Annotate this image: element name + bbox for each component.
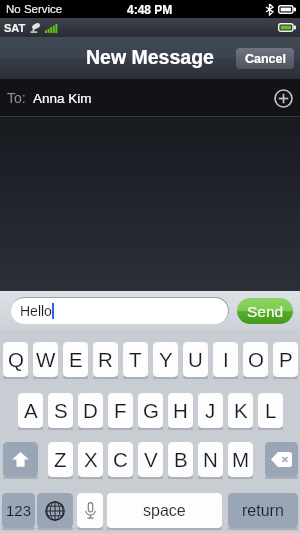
staticText: F — [114, 399, 127, 422]
staticText: Hello — [20, 303, 52, 319]
staticText: H — [173, 399, 188, 422]
staticText: N — [203, 448, 218, 471]
button[interactable]: Z — [48, 442, 73, 477]
button[interactable]: W — [33, 342, 58, 377]
button[interactable]: Shift — [3, 442, 38, 477]
staticText: X — [84, 448, 98, 471]
button[interactable]: S — [48, 393, 73, 428]
staticText: Z — [54, 448, 67, 471]
button[interactable]: Add contact — [272, 87, 294, 109]
staticText: K — [234, 399, 248, 422]
button[interactable]: P — [273, 342, 298, 377]
button[interactable]: U — [183, 342, 208, 377]
staticText: V — [144, 448, 158, 471]
button[interactable]: Backspace — [265, 442, 298, 477]
button[interactable]: H — [168, 393, 193, 428]
button[interactable]: return — [228, 493, 298, 528]
button[interactable]: To: — [0, 79, 300, 117]
button[interactable]: Q — [3, 342, 28, 377]
staticText: L — [265, 399, 277, 422]
staticText: Anna Kim — [33, 91, 92, 106]
staticText: 123 — [6, 502, 32, 519]
button[interactable]: N — [198, 442, 223, 477]
button[interactable]: A — [18, 393, 43, 428]
button[interactable]: Switch keyboard — [37, 493, 73, 528]
button[interactable]: I — [213, 342, 238, 377]
button[interactable]: K — [228, 393, 253, 428]
staticText: I — [223, 348, 229, 371]
button[interactable]: D — [78, 393, 103, 428]
staticText: B — [174, 448, 188, 471]
staticText: D — [83, 399, 98, 422]
button[interactable]: G — [138, 393, 163, 428]
staticText: W — [36, 348, 56, 371]
staticText: M — [232, 448, 250, 471]
button[interactable]: E — [63, 342, 88, 377]
staticText: 4:48 PM — [127, 3, 173, 16]
staticText: Cancel — [245, 52, 286, 66]
staticText: C — [113, 448, 128, 471]
button[interactable]: Y — [153, 342, 178, 377]
button[interactable]: C — [108, 442, 133, 477]
staticText: R — [98, 348, 113, 371]
button[interactable]: Hello — [11, 298, 228, 324]
staticText: No Service — [6, 3, 63, 16]
button[interactable]: B — [168, 442, 193, 477]
staticText: J — [205, 399, 216, 422]
button[interactable]: V — [138, 442, 163, 477]
button[interactable]: J — [198, 393, 223, 428]
staticText: Q — [8, 348, 24, 371]
staticText: Send — [247, 303, 284, 320]
button[interactable]: O — [243, 342, 268, 377]
staticText: O — [248, 348, 264, 371]
staticText: E — [69, 348, 83, 371]
staticText: S — [54, 399, 68, 422]
button[interactable]: R — [93, 342, 118, 377]
button[interactable]: T — [123, 342, 148, 377]
button[interactable]: F — [108, 393, 133, 428]
staticText: SAT — [4, 22, 26, 34]
staticText: To: — [7, 90, 26, 106]
button[interactable]: Dictation — [77, 493, 103, 528]
staticText: A — [24, 399, 38, 422]
button[interactable]: M — [228, 442, 253, 477]
staticText: U — [188, 348, 203, 371]
staticText: New Message — [86, 46, 214, 68]
staticText: G — [143, 399, 159, 422]
staticText: Y — [159, 348, 173, 371]
staticText: T — [129, 348, 142, 371]
button[interactable]: 123 — [2, 493, 35, 528]
staticText: space — [143, 502, 186, 520]
button[interactable]: L — [258, 393, 283, 428]
button[interactable]: Send — [237, 298, 293, 324]
staticText: return — [242, 502, 284, 520]
button[interactable]: space — [107, 493, 222, 528]
button[interactable]: X — [78, 442, 103, 477]
button[interactable]: Cancel — [236, 48, 294, 69]
staticText: P — [279, 348, 293, 371]
